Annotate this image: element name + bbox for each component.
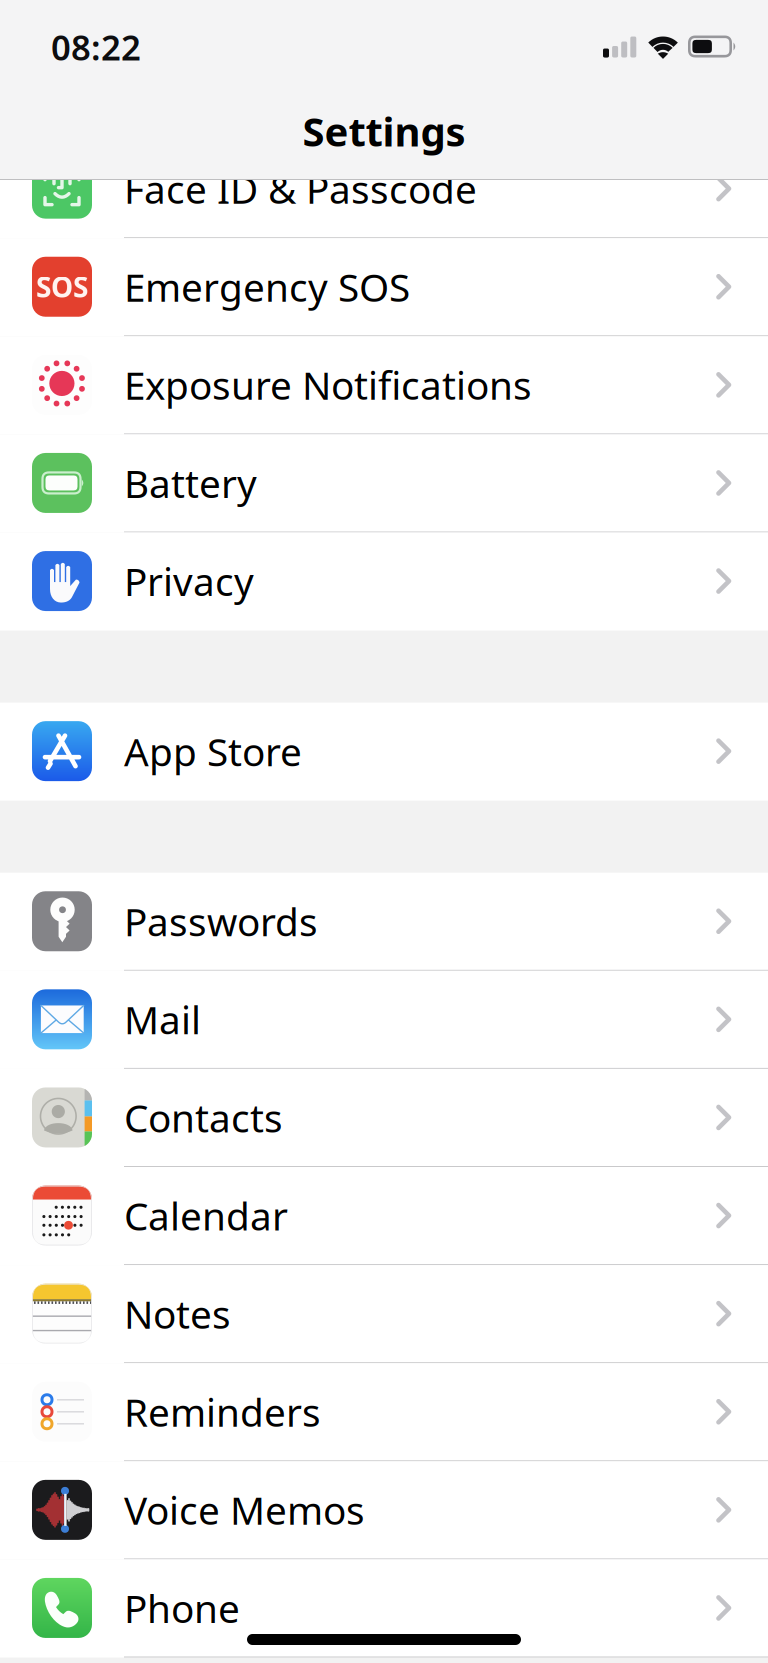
button[interactable]: Mail xyxy=(0,971,768,1069)
button[interactable]: Reminders xyxy=(0,1363,768,1461)
staticText: Privacy xyxy=(124,555,254,607)
staticText: Reminders xyxy=(124,1386,321,1437)
button[interactable]: Passwords xyxy=(0,873,768,971)
button[interactable]: Privacy xyxy=(0,532,768,631)
staticText: Notes xyxy=(124,1288,231,1339)
staticText: Mail xyxy=(124,994,201,1045)
button[interactable]: App Store xyxy=(0,703,768,801)
staticText: Phone xyxy=(124,1582,240,1634)
button[interactable]: Face ID & Passcode xyxy=(0,140,768,238)
button[interactable]: Calendar xyxy=(0,1167,768,1265)
staticText: Voice Memos xyxy=(124,1484,365,1535)
button[interactable]: Exposure Notifications xyxy=(0,336,768,434)
staticText: Face ID & Passcode xyxy=(124,163,477,214)
button[interactable]: Phone xyxy=(0,1559,768,1657)
button[interactable]: SOS xyxy=(0,238,768,336)
staticText: Exposure Notifications xyxy=(124,359,532,410)
staticText: SOS xyxy=(36,268,88,305)
staticText: Emergency SOS xyxy=(124,261,410,312)
button[interactable]: Battery xyxy=(0,434,768,532)
button[interactable]: Notes xyxy=(0,1265,768,1363)
staticText: Passwords xyxy=(124,896,318,947)
button[interactable]: Contacts xyxy=(0,1069,768,1167)
staticText: Contacts xyxy=(124,1092,283,1143)
staticText: App Store xyxy=(124,725,302,777)
staticText: 08:22 xyxy=(51,24,141,70)
staticText: Calendar xyxy=(124,1190,288,1241)
staticText: Settings xyxy=(302,104,465,157)
button[interactable]: Voice Memos xyxy=(0,1461,768,1559)
staticText: Battery xyxy=(124,457,257,509)
